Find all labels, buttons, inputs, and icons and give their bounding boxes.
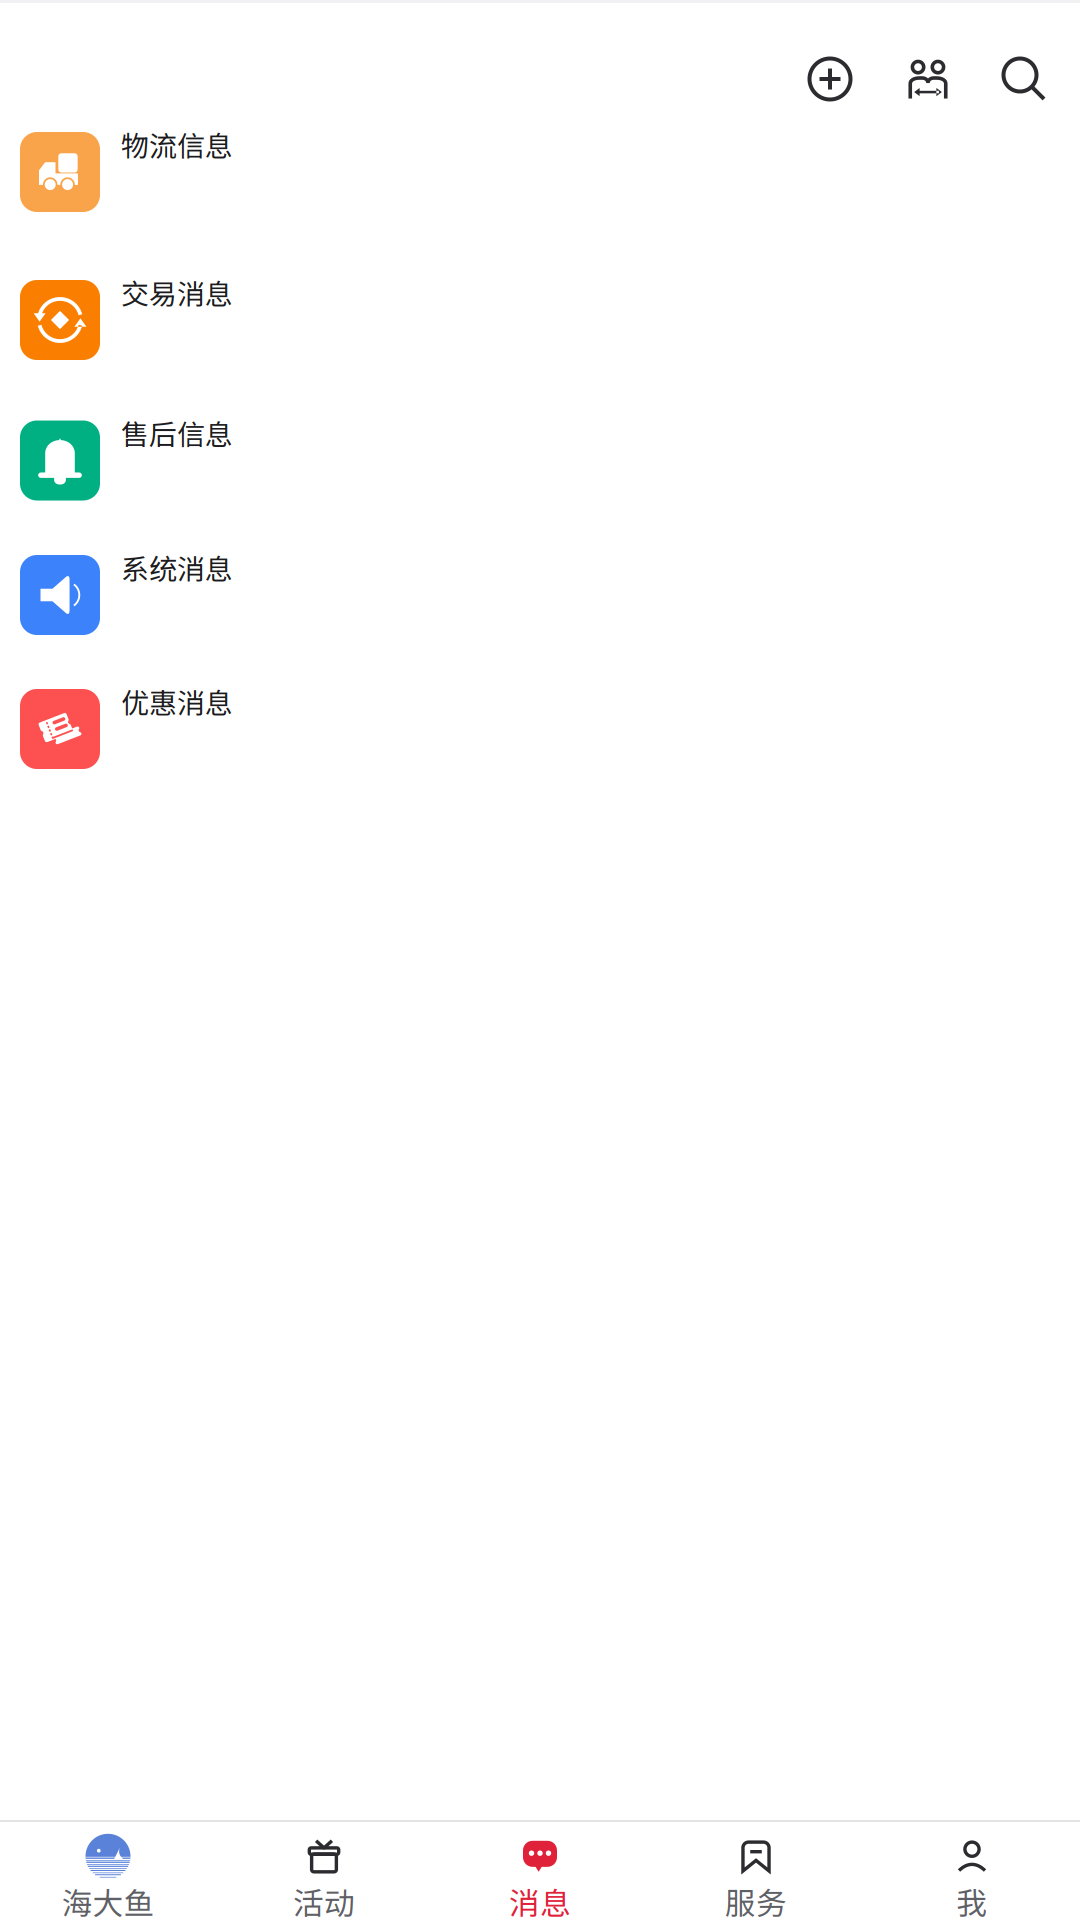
button[interactable]: Search — [997, 53, 1049, 105]
staticText: 售后信息 — [121, 412, 233, 453]
staticText: 消息 — [509, 1879, 571, 1920]
button[interactable]: 活动 — [216, 1822, 432, 1920]
staticText: 系统消息 — [121, 547, 233, 587]
button[interactable]: 我 — [864, 1822, 1080, 1920]
button[interactable]: Friends — [902, 53, 954, 105]
staticText: 海大鱼 — [61, 1879, 154, 1920]
button[interactable]: 交易消息 — [0, 247, 1080, 393]
button[interactable]: 优惠消息 — [0, 662, 1080, 796]
staticText: 交易消息 — [121, 272, 233, 312]
staticText: 优惠消息 — [121, 681, 233, 721]
button[interactable]: 售后信息 — [0, 393, 1080, 528]
button[interactable]: Add — [804, 53, 856, 105]
staticText: 服务 — [725, 1879, 787, 1920]
staticText: 我 — [956, 1879, 987, 1920]
button[interactable]: 物流信息 — [0, 97, 1080, 247]
staticText: 活动 — [293, 1879, 355, 1920]
button[interactable]: 消息 — [432, 1822, 648, 1920]
staticText: 物流信息 — [121, 124, 233, 164]
button[interactable]: 系统消息 — [0, 528, 1080, 662]
button[interactable]: 服务 — [648, 1822, 864, 1920]
button[interactable]: 海大鱼 — [0, 1822, 216, 1920]
